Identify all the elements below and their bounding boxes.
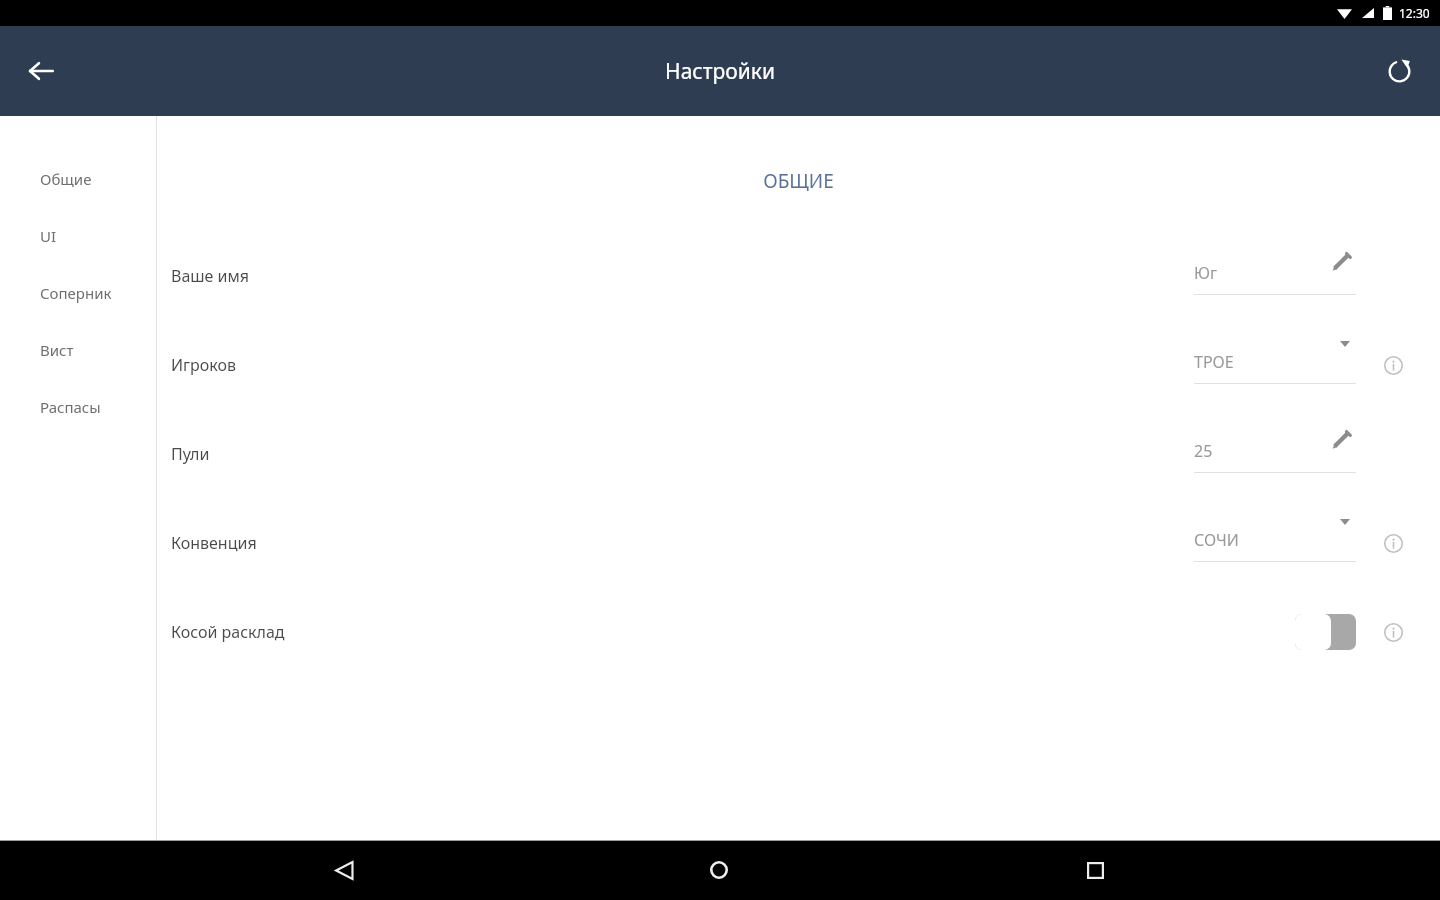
staticText: Вист — [40, 340, 74, 360]
staticText: Соперник — [40, 283, 112, 303]
staticText: Пули — [171, 443, 210, 465]
staticText: Настройки — [665, 57, 775, 86]
button[interactable]: Ваше имя — [157, 231, 1440, 320]
button[interactable]: Open Конвенция list — [1334, 511, 1356, 533]
staticText: UI — [40, 226, 57, 246]
button[interactable]: Распасы — [0, 378, 156, 435]
staticText: 12:30 — [1399, 5, 1430, 21]
button[interactable]: Соперник — [0, 264, 156, 321]
staticText: Ваше имя — [171, 265, 250, 287]
button[interactable]: Back — [14, 44, 68, 98]
button[interactable]: Info about Косой расклад — [1376, 615, 1410, 649]
staticText: ТРОЕ — [1194, 351, 1234, 373]
button[interactable]: Home — [688, 840, 750, 900]
button[interactable]: Back — [313, 840, 375, 900]
button[interactable]: Info about Конвенция — [1376, 526, 1410, 560]
button[interactable]: Reset to defaults — [1374, 46, 1424, 96]
staticText: Игроков — [171, 354, 237, 376]
staticText: 25 — [1194, 440, 1213, 462]
staticText: ОБЩИЕ — [157, 168, 1440, 194]
staticText: Юг — [1194, 262, 1217, 284]
staticText: Косой расклад — [171, 621, 285, 643]
button[interactable]: Пули — [157, 409, 1440, 498]
button[interactable]: Recent apps — [1064, 840, 1126, 900]
button[interactable]: Конвенция — [157, 498, 1440, 587]
button[interactable]: Косой расклад — [157, 587, 1440, 676]
button[interactable]: Вист — [0, 321, 156, 378]
button[interactable]: Open Игроков list — [1334, 333, 1356, 355]
staticText: Общие — [40, 169, 92, 189]
button[interactable]: Общие — [0, 150, 156, 207]
button[interactable]: Игроков — [157, 320, 1440, 409]
staticText: СОЧИ — [1194, 529, 1239, 551]
staticText: Конвенция — [171, 532, 257, 554]
button[interactable]: Edit Ваше имя — [1326, 246, 1356, 276]
button[interactable]: UI — [0, 207, 156, 264]
button[interactable]: Info about Игроков — [1376, 348, 1410, 382]
button[interactable]: Toggle Косой расклад — [1295, 614, 1356, 650]
staticText: Распасы — [40, 397, 101, 417]
button[interactable]: Edit Пули — [1326, 424, 1356, 454]
